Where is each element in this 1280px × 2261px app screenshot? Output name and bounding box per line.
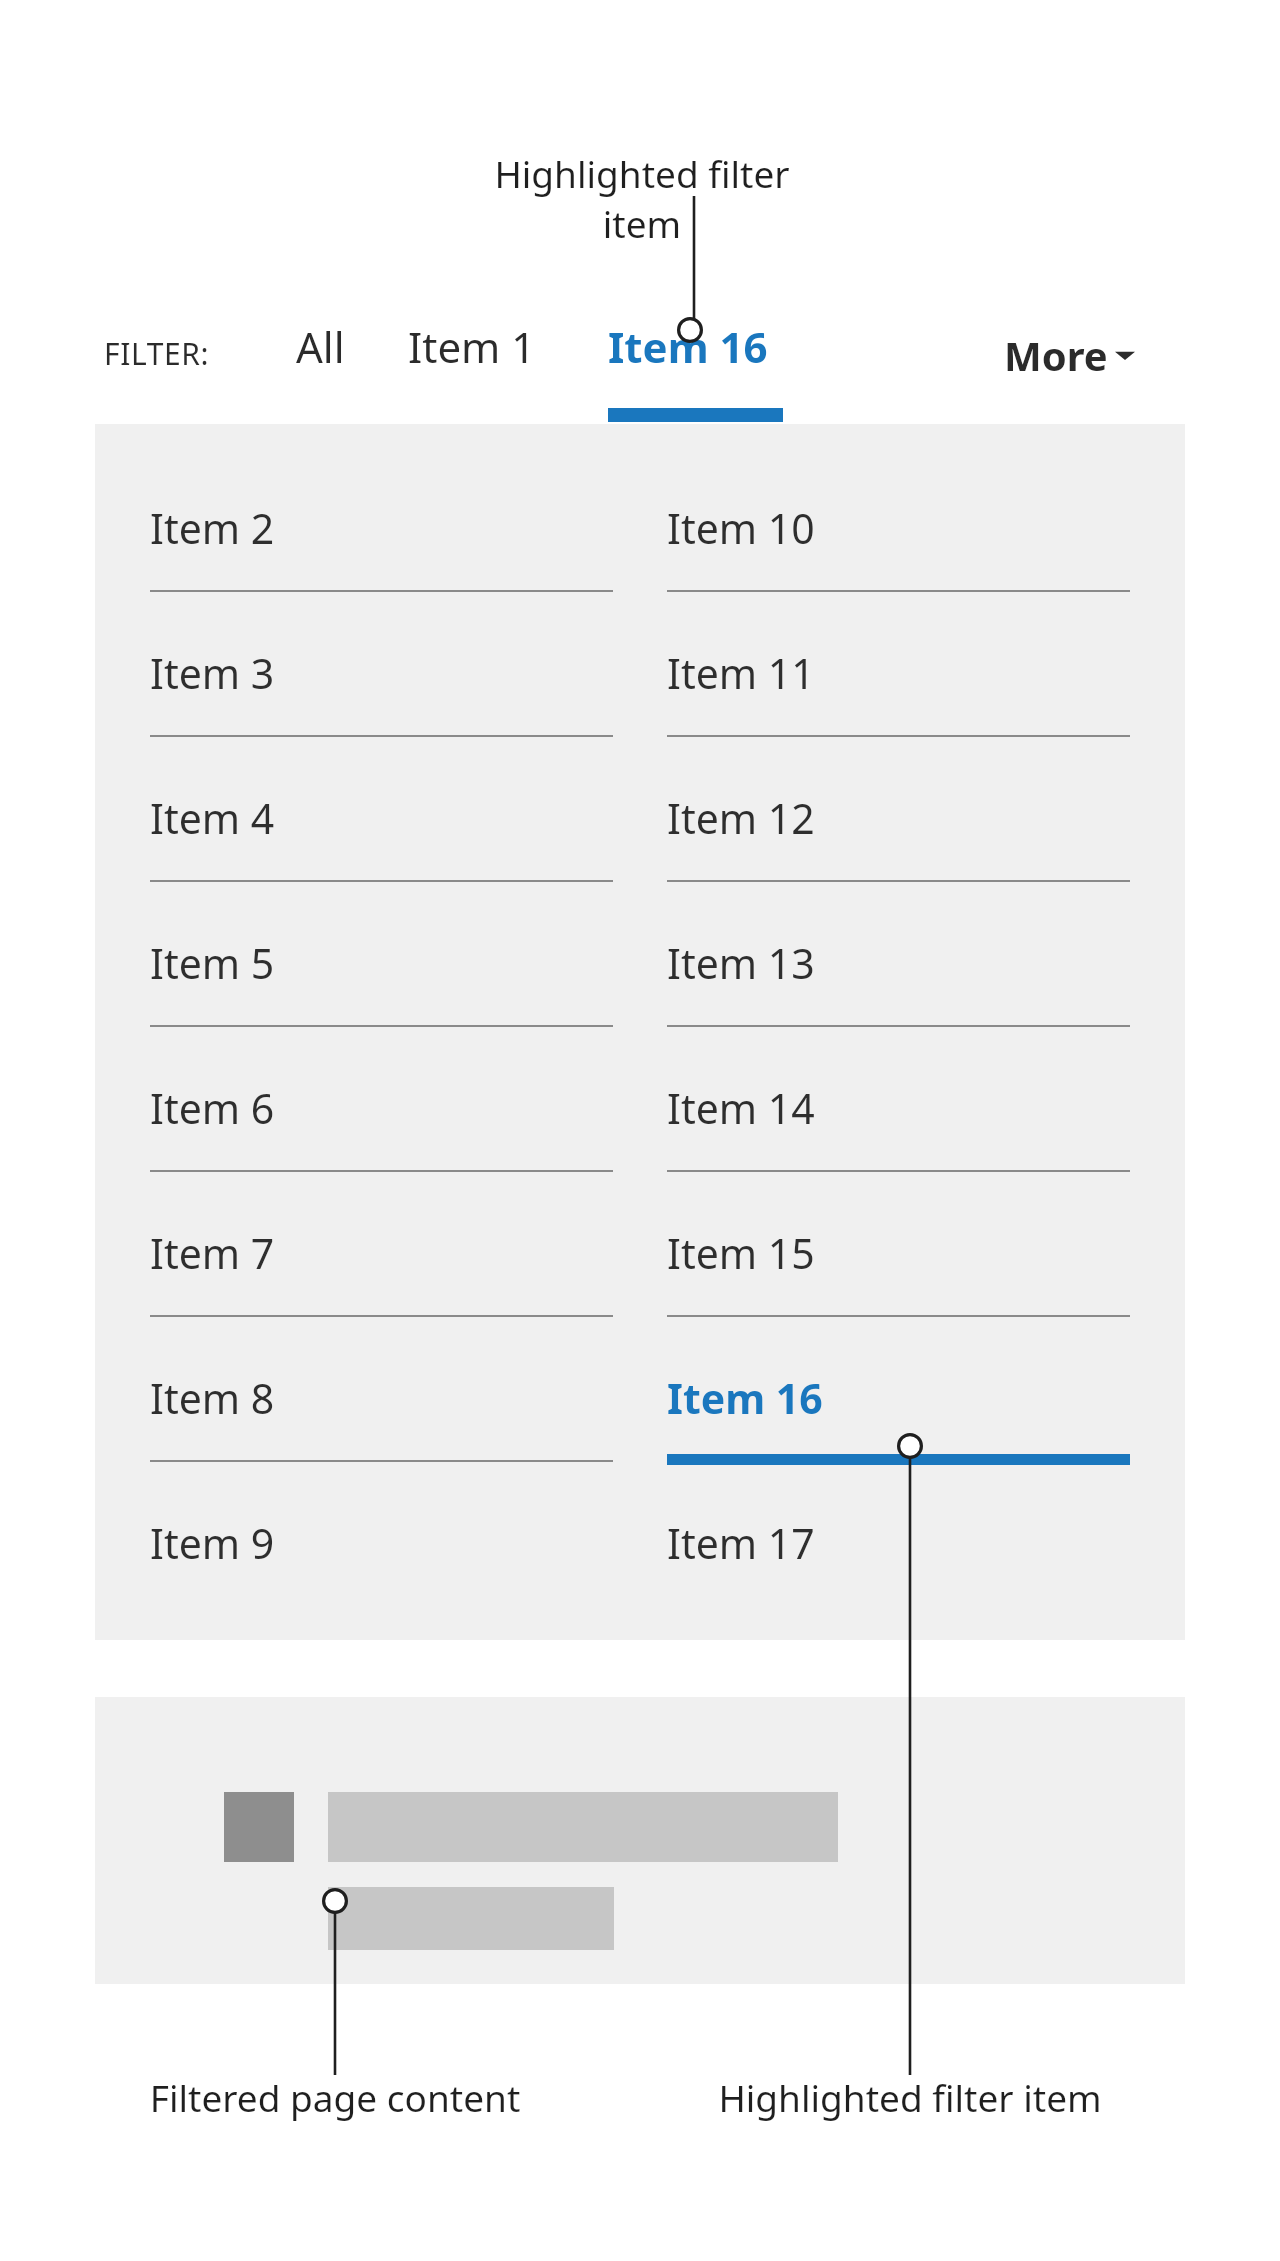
button[interactable]: Item 6 [150,1080,613,1172]
button[interactable]: Item 1 [408,318,536,375]
staticText: Item 6 [150,1080,275,1136]
staticText: Item 14 [667,1080,815,1136]
button[interactable]: Item 10 [667,500,1130,592]
staticText: Item 9 [150,1515,275,1571]
staticText: Item 5 [150,935,275,991]
staticText: FILTER: [104,333,210,374]
staticText: Item 11 [667,645,815,701]
staticText: Item 1 [408,318,536,375]
staticText: Item 13 [667,935,815,991]
staticText: Item 3 [150,645,275,701]
button[interactable]: Item 2 [150,500,613,592]
button[interactable]: Item 14 [667,1080,1130,1172]
staticText: Item 10 [667,500,815,556]
button[interactable]: Item 13 [667,935,1130,1027]
staticText: More [1004,328,1108,382]
staticText: Item 4 [150,790,275,846]
staticText: Item 2 [150,500,275,556]
button[interactable]: Item 4 [150,790,613,882]
button[interactable]: Item 7 [150,1225,613,1317]
button[interactable]: Item 11 [667,645,1130,737]
staticText: Item 16 [667,1370,823,1426]
button[interactable]: Item 17 [667,1515,1130,1571]
staticText: Item 12 [667,790,815,846]
staticText: Item 15 [667,1225,815,1281]
button[interactable]: Item 12 [667,790,1130,882]
staticText: Filtered page content [60,2072,610,2122]
staticText: Item 8 [150,1370,275,1426]
staticText: Highlighted filter item [452,148,832,248]
staticText: All [296,318,345,375]
button[interactable]: Item 9 [150,1515,613,1571]
button[interactable]: Item 5 [150,935,613,1027]
button[interactable]: Item 15 [667,1225,1130,1317]
staticText: Highlighted filter item [640,2072,1180,2122]
staticText: Item 17 [667,1515,815,1571]
button[interactable]: Item 8 [150,1370,613,1462]
button[interactable]: More [1000,322,1139,388]
button[interactable]: All [296,318,345,375]
staticText: Item 7 [150,1225,275,1281]
button[interactable]: Item 16 [608,318,783,422]
staticText: Item 16 [608,318,768,375]
button[interactable]: Item 16 [667,1370,1130,1465]
button[interactable]: Item 3 [150,645,613,737]
